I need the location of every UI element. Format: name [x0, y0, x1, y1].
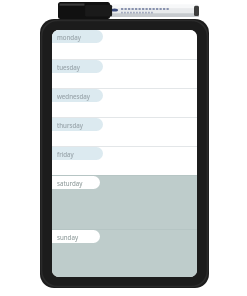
- button[interactable]: saturday: [52, 176, 100, 189]
- button[interactable]: monday: [52, 30, 197, 59]
- button[interactable]: tuesday: [52, 60, 103, 73]
- button[interactable]: Dry erase marker: [58, 2, 199, 19]
- button[interactable]: tuesday: [52, 59, 197, 88]
- staticText: tuesday: [57, 63, 80, 71]
- button[interactable]: sunday: [52, 230, 100, 243]
- button[interactable]: wednesday: [52, 88, 197, 117]
- staticText: wednesday: [57, 92, 90, 100]
- staticText: monday: [57, 33, 81, 41]
- button[interactable]: thursday: [52, 118, 103, 131]
- staticText: sunday: [57, 233, 79, 241]
- button[interactable]: friday: [52, 147, 103, 160]
- button[interactable]: monday: [52, 30, 103, 43]
- button[interactable]: saturday: [52, 175, 197, 229]
- button[interactable]: thursday: [52, 117, 197, 146]
- button[interactable]: sunday: [52, 229, 197, 277]
- button[interactable]: wednesday: [52, 89, 103, 102]
- staticText: friday: [57, 150, 74, 158]
- button[interactable]: monday: [40, 19, 209, 288]
- staticText: saturday: [57, 179, 83, 187]
- button[interactable]: friday: [52, 146, 197, 175]
- staticText: thursday: [57, 121, 83, 129]
